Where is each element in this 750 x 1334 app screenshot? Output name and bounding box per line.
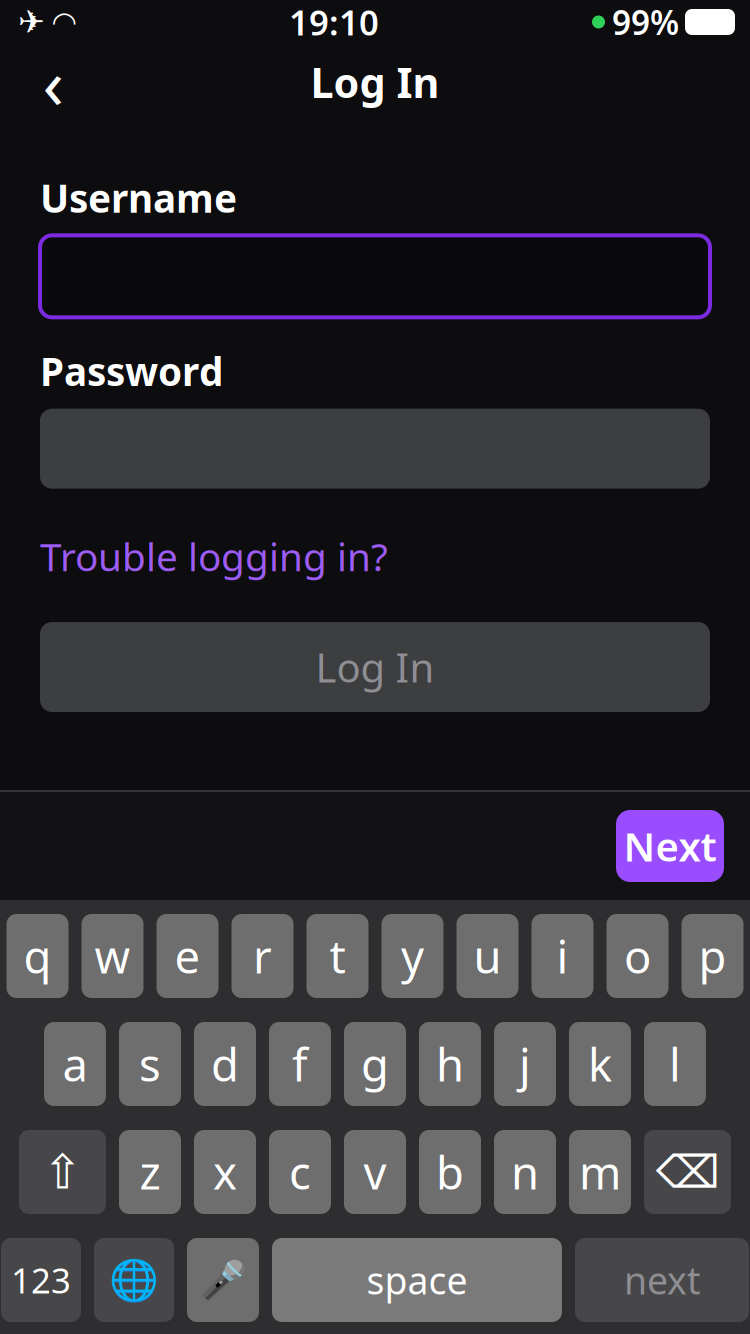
button[interactable]: f [269, 1022, 331, 1106]
staticText: space [366, 1255, 467, 1305]
button[interactable]: y [381, 914, 443, 998]
staticText: e [174, 926, 200, 986]
staticText: g [361, 1034, 389, 1094]
button[interactable]: Shift [19, 1130, 106, 1214]
staticText: Log In [315, 640, 434, 694]
button[interactable]: q [6, 914, 68, 998]
button[interactable]: e [156, 914, 218, 998]
staticText: Next [623, 819, 716, 872]
staticText: ✈ [18, 4, 45, 40]
button[interactable]: space [272, 1238, 562, 1322]
staticText: s [139, 1034, 161, 1094]
staticText: u [473, 926, 501, 986]
button[interactable] [40, 235, 710, 317]
staticText: c [289, 1142, 311, 1202]
staticText: i [556, 926, 568, 986]
button[interactable]: next [575, 1238, 749, 1322]
button[interactable]: Delete [644, 1130, 731, 1214]
button[interactable]: c [269, 1130, 331, 1214]
button[interactable]: s [119, 1022, 181, 1106]
button[interactable]: o [606, 914, 668, 998]
staticText: ⌫ [655, 1146, 719, 1198]
staticText: p [698, 926, 726, 986]
button[interactable]: Dictation [187, 1238, 259, 1322]
button[interactable]: j [494, 1022, 556, 1106]
button[interactable]: z [119, 1130, 181, 1214]
button[interactable]: b [419, 1130, 481, 1214]
button[interactable]: l [644, 1022, 706, 1106]
staticText: a [62, 1034, 87, 1094]
staticText: h [436, 1034, 464, 1094]
button[interactable]: k [569, 1022, 631, 1106]
button[interactable]: d [194, 1022, 256, 1106]
button[interactable]: v [344, 1130, 406, 1214]
button[interactable]: r [231, 914, 293, 998]
staticText: t [329, 926, 345, 986]
staticText: x [213, 1142, 237, 1202]
button[interactable]: h [419, 1022, 481, 1106]
staticText: Log In [310, 55, 439, 109]
button[interactable]: Back [18, 51, 88, 113]
staticText: f [292, 1034, 308, 1094]
button[interactable]: g [344, 1022, 406, 1106]
button[interactable]: a [44, 1022, 106, 1106]
staticText: m [579, 1142, 621, 1202]
staticText: Username [40, 172, 237, 223]
button[interactable]: i [531, 914, 593, 998]
button[interactable]: Next keyboard [94, 1238, 174, 1322]
staticText: 19:10 [289, 0, 379, 45]
staticText: Password [40, 345, 223, 397]
button[interactable]: 123 [1, 1238, 81, 1322]
button[interactable]: Next [616, 810, 724, 882]
staticText: 🌐 [109, 1257, 159, 1303]
staticText: y [401, 926, 424, 986]
staticText: 🎤 [200, 1259, 246, 1301]
staticText: 99% [612, 0, 679, 44]
staticText: ⇧ [42, 1145, 82, 1199]
staticText: k [588, 1034, 612, 1094]
button[interactable]: t [306, 914, 368, 998]
staticText: 123 [11, 1257, 71, 1303]
staticText: Trouble logging in? [40, 531, 388, 582]
staticText: d [211, 1034, 239, 1094]
button[interactable]: x [194, 1130, 256, 1214]
staticText: b [436, 1142, 464, 1202]
staticText: l [669, 1034, 681, 1094]
staticText: r [253, 926, 272, 986]
button[interactable]: Trouble logging in? [40, 531, 388, 582]
button[interactable]: m [569, 1130, 631, 1214]
staticText: z [139, 1142, 160, 1202]
button[interactable]: w [81, 914, 143, 998]
staticText: j [519, 1034, 531, 1094]
staticText: n [511, 1142, 539, 1202]
staticText: o [624, 926, 651, 986]
button[interactable]: Log In [40, 622, 710, 712]
staticText: ◠ [53, 5, 76, 39]
button[interactable]: n [494, 1130, 556, 1214]
button[interactable]: p [681, 914, 743, 998]
staticText: w [94, 926, 130, 986]
button[interactable]: u [456, 914, 518, 998]
staticText: ‹ [42, 36, 63, 128]
staticText: v [363, 1142, 386, 1202]
staticText: q [23, 926, 51, 986]
staticText: next [624, 1255, 700, 1305]
